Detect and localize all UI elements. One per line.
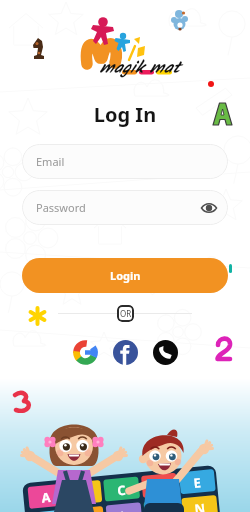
button[interactable]: Sign in with Facebook: [113, 340, 138, 365]
staticText: Email: [36, 154, 65, 169]
staticText: Log In: [0, 101, 250, 128]
button[interactable]: Sign in with phone number: [153, 340, 178, 365]
staticText: OR: [120, 308, 132, 319]
button[interactable]: Login: [22, 258, 228, 293]
button[interactable]: Sign in with Google: [73, 340, 98, 365]
staticText: Login: [110, 268, 141, 283]
staticText: magik mat: [99, 55, 180, 82]
button[interactable]: Email: [22, 144, 228, 179]
staticText: Password: [36, 200, 86, 215]
button[interactable]: Show password: [201, 200, 217, 216]
button[interactable]: Password: [22, 190, 228, 225]
